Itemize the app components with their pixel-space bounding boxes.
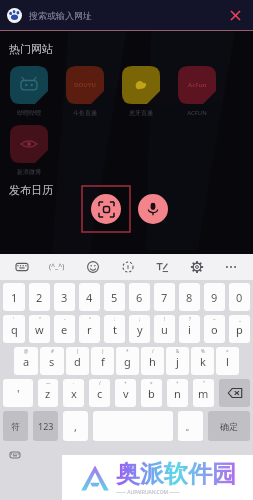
staticText: h <box>149 354 156 369</box>
staticText: 7 <box>161 290 168 305</box>
button[interactable]: Keyboard layout <box>9 254 35 280</box>
staticText: s <box>49 354 55 369</box>
button[interactable]: 1 <box>3 283 25 311</box>
button[interactable] <box>122 66 160 104</box>
staticText: f <box>101 354 105 369</box>
staticText: ? <box>189 316 191 322</box>
button[interactable]: 9 <box>204 283 225 311</box>
button[interactable]: % <box>191 347 214 375</box>
staticText: 5 <box>111 290 118 305</box>
staticText: 奥派软件园 <box>116 459 236 489</box>
button[interactable]: ' <box>3 315 25 343</box>
button[interactable]: _ <box>229 315 250 343</box>
button[interactable]: 6 <box>129 283 150 311</box>
button[interactable]: × <box>141 379 162 407</box>
button[interactable]: ! <box>154 315 175 343</box>
button[interactable]: & <box>166 347 189 375</box>
staticText: 4 <box>86 290 93 305</box>
staticText: AcFun <box>188 81 207 89</box>
staticText: ~ <box>213 316 216 322</box>
button[interactable]: ' <box>3 379 33 407</box>
button[interactable]: / <box>141 347 164 375</box>
button[interactable]: ~ <box>204 315 225 343</box>
staticText: % <box>201 348 205 354</box>
button[interactable]: Close <box>224 4 246 26</box>
button[interactable]: Move cursor <box>115 254 141 280</box>
button[interactable]: / <box>89 379 110 407</box>
staticText: 8 <box>186 290 193 305</box>
button[interactable]: " <box>29 315 50 343</box>
button[interactable]: 确定 <box>208 411 250 441</box>
staticText: j <box>176 354 179 369</box>
button[interactable]: Handwriting <box>149 254 175 280</box>
staticText: + <box>124 380 127 386</box>
button[interactable]: @ <box>14 347 38 375</box>
button[interactable]: , <box>63 411 88 441</box>
button[interactable]: ( <box>66 347 89 375</box>
button[interactable]: * <box>116 347 139 375</box>
button[interactable]: + <box>115 379 136 407</box>
button[interactable]: ÷ <box>167 379 188 407</box>
button[interactable]: — <box>38 379 58 407</box>
staticText: w <box>35 322 44 337</box>
button[interactable]: Settings <box>184 254 210 280</box>
button[interactable]: 。 <box>178 411 203 441</box>
staticText: , <box>74 419 77 434</box>
staticText: r <box>87 322 92 337</box>
staticText: e <box>61 322 68 337</box>
staticText: · <box>73 380 75 386</box>
button[interactable]: AcFun <box>178 66 216 104</box>
staticText: 斗鱼直播 <box>65 109 105 117</box>
button[interactable] <box>10 66 48 104</box>
button[interactable]: : <box>104 315 125 343</box>
button[interactable]: ; <box>129 315 150 343</box>
button[interactable]: DOUYU <box>66 66 104 104</box>
button[interactable]: " <box>193 379 214 407</box>
button[interactable]: (^_^) <box>43 254 71 280</box>
button[interactable]: ? <box>179 315 200 343</box>
button[interactable]: ) <box>91 347 114 375</box>
button[interactable]: Hide keyboard <box>2 445 28 465</box>
button[interactable]: 3 <box>54 283 75 311</box>
button[interactable]: More options <box>218 254 244 280</box>
staticText: d <box>74 354 81 369</box>
staticText: x <box>71 386 77 401</box>
button[interactable]: 5 <box>104 283 125 311</box>
button[interactable]: - <box>54 315 75 343</box>
staticText: 符 <box>11 421 20 432</box>
button[interactable]: # <box>40 347 64 375</box>
staticText: y <box>137 322 143 337</box>
button[interactable]: · <box>63 379 84 407</box>
staticText: t <box>113 322 117 337</box>
button[interactable]: 8 <box>179 283 200 311</box>
staticText: (^_^) <box>49 262 65 272</box>
staticText: ÷ <box>176 380 179 386</box>
staticText: 3 <box>61 290 68 305</box>
button[interactable]: Emoji <box>80 254 106 280</box>
button[interactable]: 符 <box>3 411 28 441</box>
staticText: 0 <box>236 290 243 305</box>
button[interactable]: 2 <box>29 283 50 311</box>
button[interactable]: ° <box>79 315 100 343</box>
staticText: a <box>23 354 30 369</box>
staticText: 。 <box>185 419 196 433</box>
staticText: ACFUN <box>177 109 217 117</box>
staticText: ' <box>13 316 15 322</box>
staticText: ; <box>139 316 141 322</box>
staticText: n <box>174 386 181 401</box>
button[interactable]: 4 <box>79 283 100 311</box>
button[interactable]: Backspace <box>219 379 250 407</box>
button[interactable]: 0 <box>229 283 250 311</box>
staticText: g <box>124 354 131 369</box>
button[interactable]: 搜索或输入网址 <box>0 0 253 30</box>
button[interactable]: = <box>216 347 239 375</box>
staticText: / <box>152 348 154 354</box>
staticText: 1 <box>11 290 18 305</box>
button[interactable]: 7 <box>154 283 175 311</box>
button[interactable]: Voice search <box>138 194 168 224</box>
button[interactable]: Scan QR code <box>91 194 121 224</box>
staticText: ! <box>164 316 166 322</box>
button[interactable]: 123 <box>33 411 58 441</box>
button[interactable] <box>10 125 48 163</box>
